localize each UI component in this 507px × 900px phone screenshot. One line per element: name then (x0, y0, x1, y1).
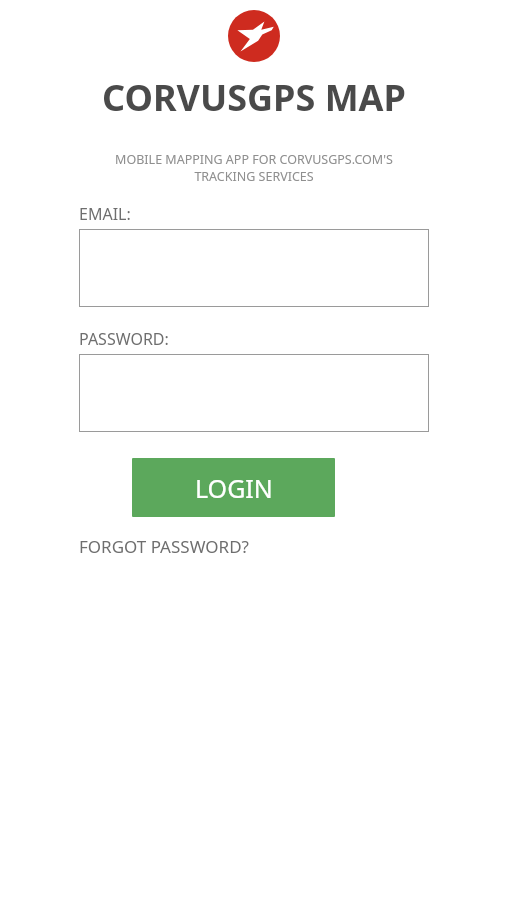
staticText: FORGOT PASSWORD? (79, 535, 249, 558)
button[interactable]: LOGIN (132, 458, 335, 517)
staticText: LOGIN (195, 471, 273, 505)
staticText: EMAIL: (79, 203, 131, 225)
button[interactable]: Email input field (79, 229, 429, 307)
button[interactable]: Password input field (79, 354, 429, 432)
staticText: PASSWORD: (79, 328, 169, 350)
staticText: CORVUSGPS MAP (102, 73, 406, 122)
button[interactable]: FORGOT PASSWORD? (79, 535, 249, 558)
staticText: MOBILE MAPPING APP FOR CORVUSGPS.COM'S T… (54, 151, 454, 185)
